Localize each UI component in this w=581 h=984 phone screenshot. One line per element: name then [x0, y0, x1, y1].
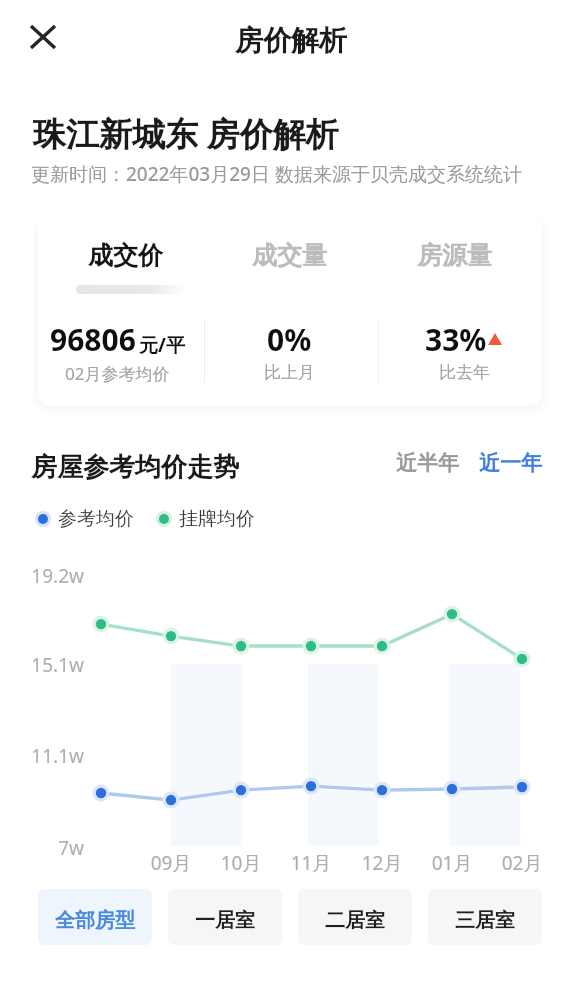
staticText: 房源量 [417, 240, 492, 271]
staticText: 挂牌均价 [179, 507, 255, 531]
button[interactable]: 一居室 [168, 889, 282, 945]
staticText: 33% [425, 319, 487, 360]
button[interactable]: 二居室 [298, 889, 412, 945]
staticText: 02月 [492, 850, 552, 876]
staticText: 全部房型 [55, 908, 135, 933]
button[interactable]: 全部房型 [38, 889, 152, 945]
staticText: 三居室 [455, 908, 515, 933]
staticText: 一居室 [195, 908, 255, 933]
staticText: 11月 [281, 850, 341, 876]
staticText: 二居室 [325, 908, 385, 933]
staticText: 10月 [211, 850, 271, 876]
staticText: 房价解析 [235, 23, 347, 58]
button[interactable]: 房源量 [370, 240, 538, 294]
staticText: 比去年 [439, 362, 490, 383]
staticText: 7w [20, 835, 84, 861]
button[interactable]: 参考均价 [35, 507, 134, 531]
staticText: 11.1w [20, 743, 84, 769]
button[interactable]: 近半年 [391, 444, 464, 482]
button[interactable]: 成交量 [205, 240, 373, 294]
staticText: 房屋参考均价走势 [31, 451, 239, 484]
button[interactable]: 三居室 [428, 889, 542, 945]
staticText: 96806 [50, 319, 136, 360]
staticText: 0% [267, 319, 312, 360]
staticText: 参考均价 [58, 507, 134, 531]
staticText: 02月参考均价 [65, 362, 170, 385]
staticText: 成交量 [252, 240, 327, 271]
staticText: 成交价 [88, 240, 163, 271]
staticText: 元/平 [139, 332, 185, 358]
staticText: 09月 [141, 850, 201, 876]
staticText: 19.2w [20, 563, 84, 589]
staticText: 更新时间：2022年03月29日 数据来源于贝壳成交系统统计 [31, 161, 522, 187]
other: Increase [487, 328, 503, 360]
button[interactable]: 近一年 [474, 444, 547, 482]
staticText: 01月 [422, 850, 482, 876]
staticText: 近一年 [479, 450, 542, 476]
staticText: 珠江新城东 房价解析 [33, 111, 339, 156]
staticText: 15.1w [20, 652, 84, 678]
button[interactable]: 成交价 [41, 240, 209, 294]
staticText: 近半年 [396, 450, 459, 476]
staticText: 12月 [352, 850, 412, 876]
staticText: 比上月 [264, 362, 315, 383]
button[interactable]: Close [21, 15, 65, 59]
button[interactable]: 挂牌均价 [156, 507, 255, 531]
